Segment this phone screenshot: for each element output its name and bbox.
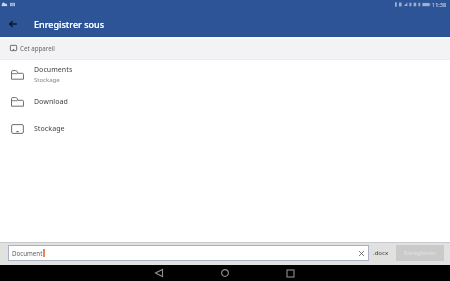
button[interactable]: Home <box>209 265 241 281</box>
button[interactable]: Back <box>0 12 26 35</box>
button[interactable]: Enregistrer <box>396 245 444 261</box>
button[interactable]: Back <box>143 265 175 281</box>
button[interactable]: Clear <box>356 248 367 259</box>
button[interactable]: Recents <box>274 265 306 281</box>
staticText: Cet appareil <box>20 44 55 52</box>
staticText: Stockage <box>34 124 65 134</box>
staticText: Document <box>12 249 43 257</box>
button[interactable]: Stockage <box>0 115 450 142</box>
staticText: .docx <box>373 249 389 257</box>
staticText: 11:38 <box>432 1 447 8</box>
button[interactable]: Cet appareil <box>10 44 55 52</box>
button[interactable]: Download <box>0 88 450 115</box>
button[interactable]: Document <box>8 245 369 261</box>
staticText: Download <box>34 97 68 107</box>
button[interactable]: Documents <box>0 61 450 88</box>
staticText: Enregistrer <box>404 249 436 257</box>
staticText: Documents <box>34 65 73 75</box>
staticText: Enregistrer sous <box>34 18 105 30</box>
staticText: Stockage <box>34 76 60 84</box>
